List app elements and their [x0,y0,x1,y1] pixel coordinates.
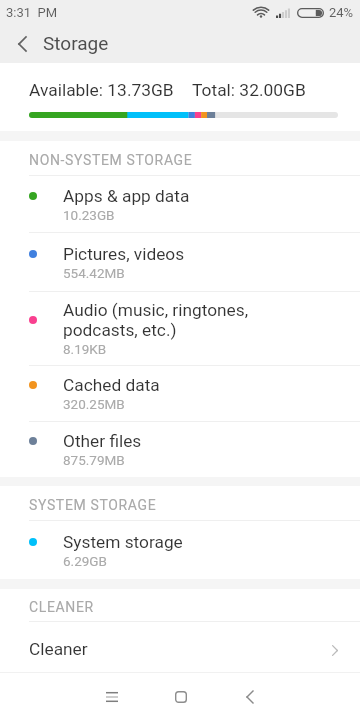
staticText: CLEANER [29,599,94,615]
button[interactable]: Menu [88,673,136,720]
staticText: Cleaner [29,639,88,659]
button[interactable]: Audio (music, ringtones, podcasts, etc.) [0,292,360,366]
button[interactable]: Other files [0,422,360,477]
button[interactable]: Cleaner [0,622,360,672]
button[interactable]: System storage [0,521,360,579]
staticText: 10.23GB [63,207,115,223]
staticText: 320.25MB [63,396,125,412]
staticText: Apps & app data [63,186,190,206]
staticText: 3:31 PM [6,5,58,20]
button[interactable]: Pictures, videos [0,233,360,292]
button[interactable]: Cached data [0,366,360,422]
staticText: SYSTEM STORAGE [29,497,157,513]
staticText: Pictures, videos [63,244,185,264]
staticText: Cached data [63,375,160,395]
button[interactable]: Back [226,673,274,720]
staticText: NON-SYSTEM STORAGE [29,152,193,168]
staticText: 24% [329,5,354,20]
button[interactable]: Apps & app data [0,176,360,233]
staticText: Audio (music, ringtones, podcasts, etc.) [63,300,249,340]
staticText: Other files [63,431,142,451]
staticText: 875.79MB [63,452,125,468]
staticText: 554.42MB [63,265,125,281]
button[interactable]: Home [157,673,205,720]
staticText: 6.29GB [63,553,107,569]
staticText: Storage [43,32,109,54]
staticText: Available: 13.73GB [29,80,174,100]
button[interactable]: Navigate up [0,24,40,63]
staticText: System storage [63,532,183,552]
staticText: 8.19KB [63,341,107,357]
staticText: Total: 32.00GB [192,80,306,100]
